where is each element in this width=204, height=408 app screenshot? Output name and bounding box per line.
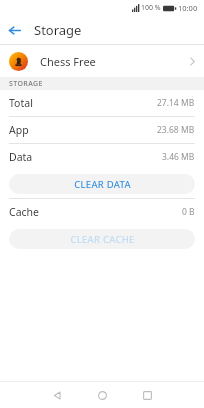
button[interactable]: App — [0, 117, 204, 143]
staticText: 10:00 — [178, 3, 198, 13]
staticText: 0 B — [182, 206, 195, 218]
button[interactable]: Back — [35, 382, 80, 408]
staticText: CLEAR CACHE — [70, 233, 135, 246]
button[interactable]: Recent apps — [125, 382, 170, 408]
button[interactable]: Back — [0, 16, 28, 44]
staticText: Data — [9, 150, 33, 164]
staticText: Total — [9, 96, 33, 110]
button[interactable]: Cache — [0, 199, 204, 225]
staticText: 100 % — [141, 3, 161, 13]
button[interactable]: Total — [0, 90, 204, 116]
button[interactable]: Home — [80, 382, 125, 408]
staticText: Chess Free — [40, 54, 96, 69]
staticText: 23.68 MB — [157, 124, 195, 136]
button[interactable]: Chess Free — [0, 45, 204, 77]
staticText: STORAGE — [9, 79, 43, 89]
button[interactable]: CLEAR DATA — [9, 174, 195, 194]
button: CLEAR CACHE — [9, 229, 195, 249]
staticText: 27.14 MB — [157, 97, 195, 109]
staticText: 3.46 MB — [162, 151, 195, 163]
button[interactable]: Data — [0, 144, 204, 170]
staticText: CLEAR DATA — [74, 178, 131, 191]
staticText: Cache — [9, 205, 39, 219]
staticText: App — [9, 123, 29, 137]
staticText: Storage — [34, 21, 82, 39]
